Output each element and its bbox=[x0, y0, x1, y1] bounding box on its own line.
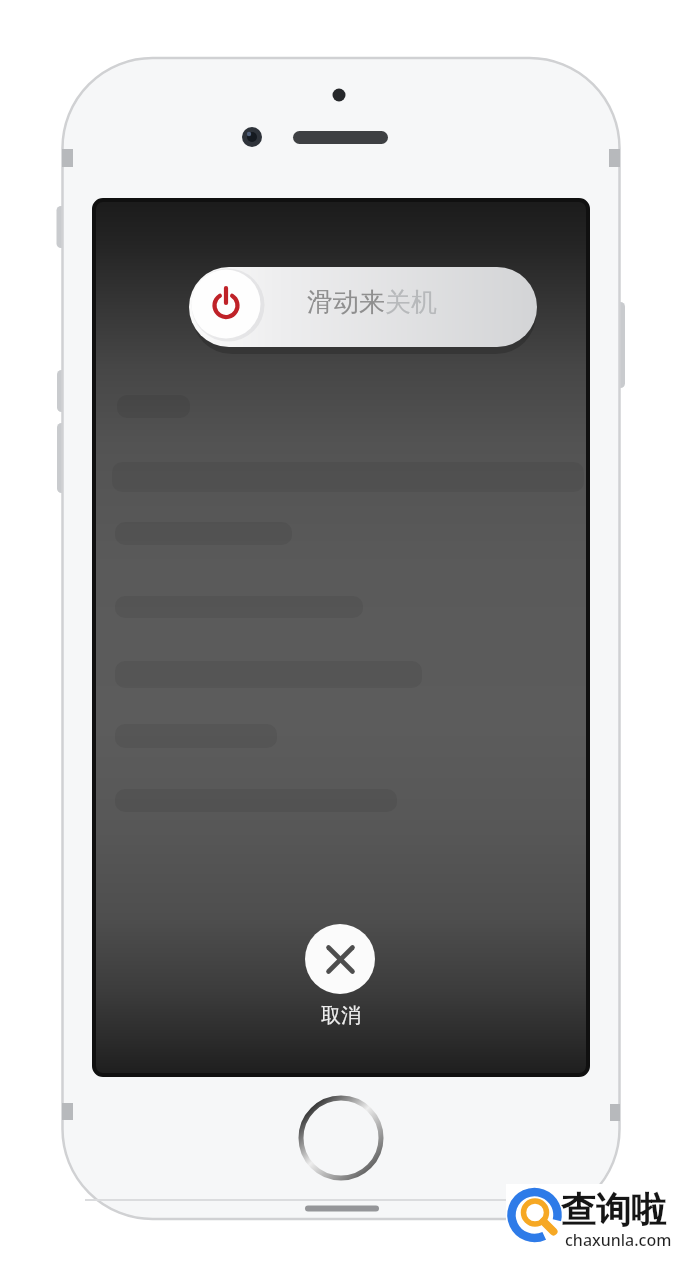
staticText: 查询啦 bbox=[561, 1188, 666, 1232]
button[interactable] bbox=[189, 267, 537, 347]
button[interactable] bbox=[305, 924, 375, 994]
staticText: 滑动来关机 bbox=[307, 286, 437, 319]
staticText: chaxunla.com bbox=[565, 1229, 672, 1251]
staticText: 取消 bbox=[321, 1003, 361, 1028]
button[interactable] bbox=[318, 1000, 364, 1030]
